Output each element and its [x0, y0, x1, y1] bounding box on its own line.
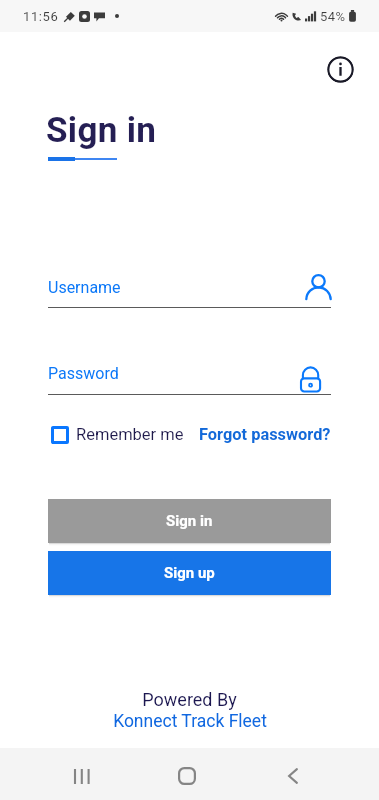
button[interactable]: Home [165, 754, 209, 798]
staticText: Sign in [46, 110, 157, 151]
staticText: Powered By [142, 689, 237, 710]
button[interactable]: Information [327, 56, 354, 83]
staticText: Konnect Track Fleet [113, 711, 267, 732]
button[interactable]: Remember me [48, 425, 184, 444]
button[interactable]: Sign up [48, 551, 331, 595]
staticText: Username [48, 278, 121, 297]
button[interactable]: Sign in [48, 499, 331, 543]
staticText: Sign in [166, 512, 213, 530]
staticText: 11:56 [23, 9, 59, 24]
button[interactable]: Back [271, 754, 315, 798]
staticText: Password [48, 364, 119, 383]
staticText: Forgot password? [199, 425, 331, 444]
button[interactable]: Recent apps [60, 754, 104, 798]
staticText: 54% [320, 9, 346, 24]
staticText: Remember me [76, 425, 184, 444]
staticText: Sign up [164, 564, 215, 582]
button[interactable]: Forgot password? [199, 425, 331, 444]
